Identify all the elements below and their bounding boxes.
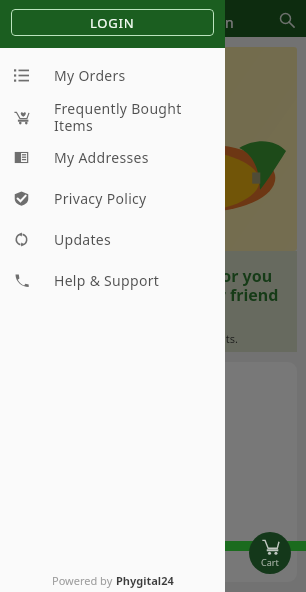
staticText: Phygital24 <box>116 573 174 588</box>
button[interactable]: My Addresses <box>0 137 225 178</box>
staticText: Updates <box>54 230 188 249</box>
button[interactable]: Cart <box>249 532 291 574</box>
staticText: Privacy Policy <box>54 189 188 208</box>
button[interactable]: My Orders <box>0 55 225 96</box>
staticText: My Addresses <box>54 148 188 167</box>
button[interactable]: Frequently Bought Items <box>0 96 225 137</box>
button[interactable]: Search <box>278 11 298 31</box>
staticText: Help & Support <box>54 271 188 290</box>
staticText: Powered by <box>52 573 116 588</box>
staticText: LOGIN <box>90 14 135 32</box>
staticText: Cart <box>261 556 279 568</box>
button[interactable]: Updates <box>0 219 225 260</box>
staticText: My Orders <box>54 66 188 85</box>
staticText: and your friend <box>155 284 279 306</box>
staticText: Healthy picks for you <box>103 265 273 287</box>
button[interactable]: Privacy Policy <box>0 178 225 219</box>
staticText: Fresh Collection <box>129 13 234 32</box>
staticText: Frequently Bought Items <box>54 99 188 135</box>
button[interactable]: Help & Support <box>0 260 225 301</box>
staticText: Handpicked fresh fruits. <box>114 331 238 346</box>
button[interactable]: LOGIN <box>11 9 214 36</box>
